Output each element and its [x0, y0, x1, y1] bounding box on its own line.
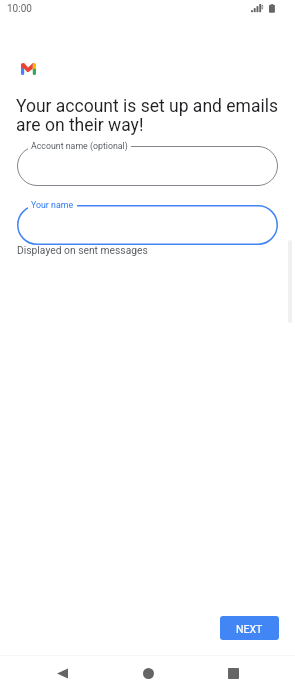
button[interactable]: Back — [45, 656, 79, 690]
button[interactable]: Recent apps — [216, 656, 250, 690]
button[interactable]: NEXT — [220, 616, 279, 640]
staticText: Your name — [31, 200, 74, 210]
button[interactable]: Your name — [17, 205, 278, 245]
staticText: NEXT — [236, 623, 263, 635]
staticText: Displayed on sent messages — [17, 244, 148, 256]
button[interactable]: Home — [131, 656, 165, 690]
staticText: Your account is set up and emails are on… — [16, 96, 281, 135]
button[interactable]: Account name (optional) — [17, 146, 278, 186]
staticText: 10:00 — [7, 3, 32, 15]
staticText: Account name (optional) — [31, 141, 128, 151]
